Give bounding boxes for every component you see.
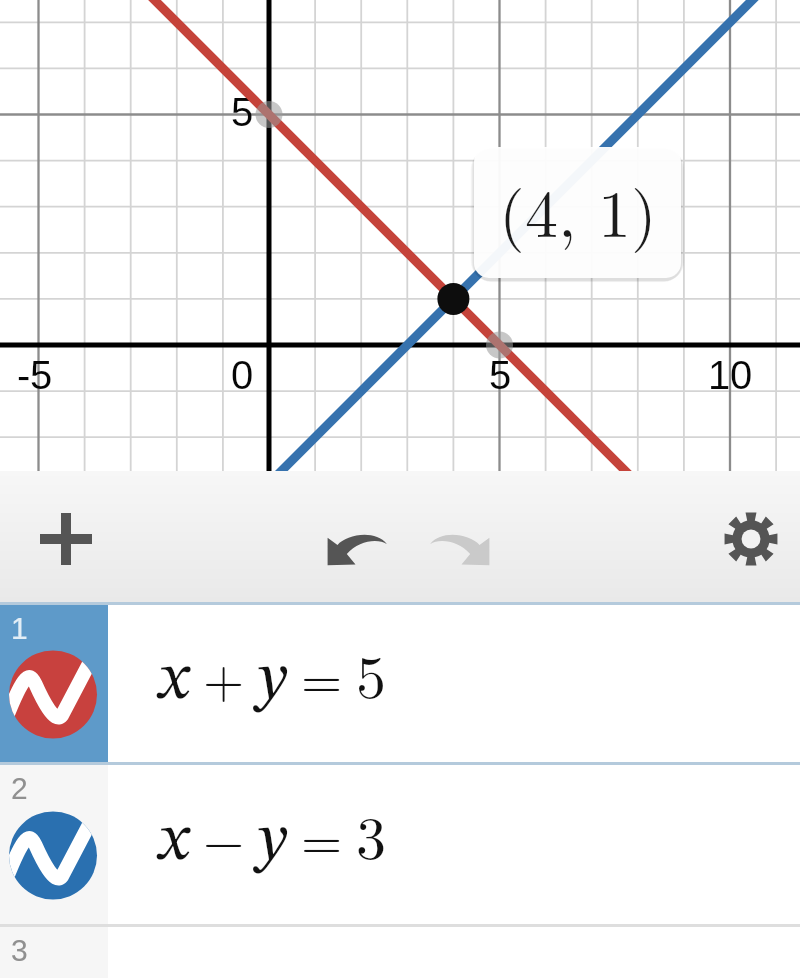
button[interactable] <box>0 605 800 762</box>
button[interactable] <box>0 927 800 978</box>
button[interactable] <box>0 765 800 924</box>
button[interactable]: Settings <box>721 509 781 569</box>
button[interactable]: Add <box>36 509 96 569</box>
button[interactable]: Undo <box>327 518 387 578</box>
button[interactable]: Redo <box>430 518 490 578</box>
